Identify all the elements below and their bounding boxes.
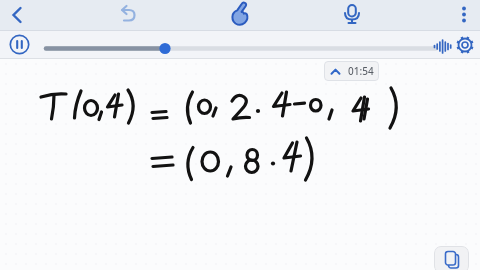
button[interactable] bbox=[454, 34, 476, 56]
button[interactable] bbox=[452, 2, 476, 26]
button[interactable] bbox=[434, 246, 469, 270]
button[interactable] bbox=[432, 37, 453, 58]
button[interactable] bbox=[5, 3, 29, 27]
button[interactable] bbox=[116, 2, 140, 26]
staticText: 01:54 bbox=[348, 64, 374, 78]
button[interactable] bbox=[40, 35, 442, 55]
button[interactable]: 01:54 bbox=[324, 61, 379, 81]
button[interactable] bbox=[8, 33, 31, 56]
button[interactable] bbox=[228, 1, 254, 27]
button[interactable] bbox=[340, 2, 364, 26]
